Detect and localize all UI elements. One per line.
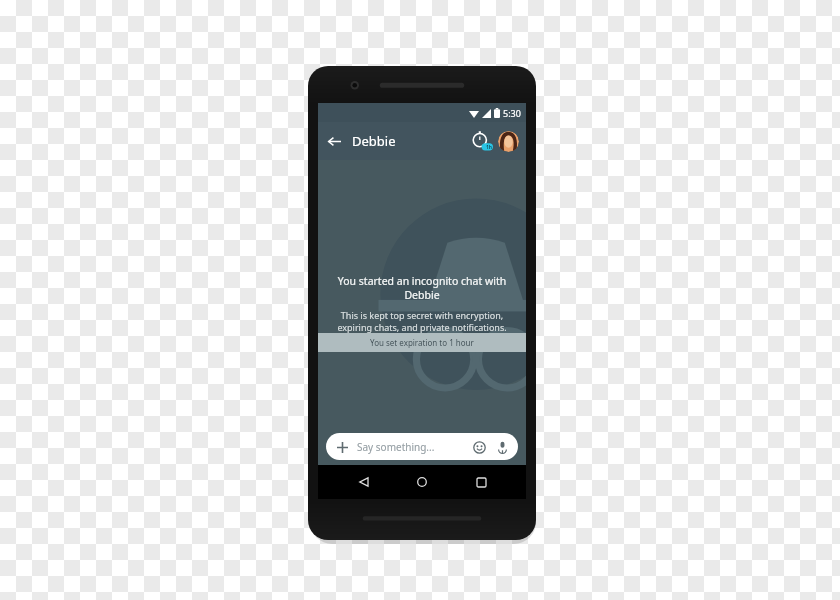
- button[interactable]: You set expiration to 1 hour: [318, 333, 526, 352]
- button[interactable]: Voice message: [493, 438, 511, 456]
- staticText: Debbie: [352, 132, 396, 150]
- staticText: You set expiration to 1 hour: [370, 337, 474, 348]
- button[interactable]: Add attachment: [326, 433, 518, 460]
- button[interactable]: Expiration timer, 1 hour: [471, 130, 493, 152]
- button[interactable]: Home: [409, 469, 435, 495]
- staticText: This is kept top secret with encryption,…: [329, 309, 515, 334]
- staticText: Say something...: [357, 440, 470, 454]
- button[interactable]: Add attachment: [334, 439, 350, 455]
- button[interactable]: Recent apps: [468, 469, 494, 495]
- button[interactable]: Back: [322, 129, 346, 153]
- staticText: 1h: [486, 144, 493, 151]
- staticText: 5:30: [503, 107, 521, 119]
- button[interactable]: Emoji: [470, 438, 488, 456]
- button[interactable]: Back: [351, 469, 377, 495]
- button[interactable]: Debbie profile: [498, 131, 519, 152]
- staticText: You started an incognito chat with Debbi…: [326, 274, 518, 302]
